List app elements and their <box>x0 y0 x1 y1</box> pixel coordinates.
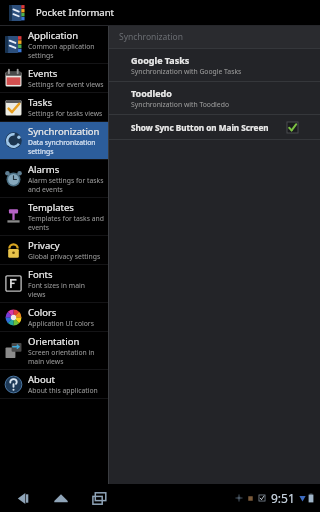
button[interactable]: Fonts <box>0 265 108 302</box>
button[interactable]: Recent apps <box>86 485 112 511</box>
staticText: Alarm settings for tasks and events <box>28 176 104 194</box>
button[interactable]: Toodledo <box>109 82 320 114</box>
staticText: Global privacy settings <box>28 252 101 261</box>
staticText: Data synchronization settings <box>28 138 104 156</box>
staticText: Settings for event views <box>28 80 104 89</box>
button[interactable]: Privacy <box>0 236 108 264</box>
staticText: Orientation <box>28 335 80 348</box>
staticText: Application UI colors <box>28 319 94 328</box>
staticText: Settings for tasks views <box>28 109 103 118</box>
staticText: About <box>28 373 55 386</box>
staticText: Privacy <box>28 239 60 252</box>
staticText: Pocket Informant <box>36 6 114 19</box>
staticText: Synchronization <box>119 31 183 43</box>
button[interactable]: Synchronization <box>0 122 108 159</box>
button[interactable]: Colors <box>0 303 108 331</box>
staticText: Application <box>28 29 79 42</box>
staticText: Toodledo <box>131 87 172 99</box>
staticText: Synchronization <box>28 125 100 138</box>
staticText: Fonts <box>28 268 53 281</box>
staticText: Templates for tasks and events <box>28 214 104 232</box>
staticText: Tasks <box>28 96 53 109</box>
button[interactable]: Templates <box>0 198 108 235</box>
button[interactable]: Google Tasks <box>109 49 320 81</box>
staticText: Templates <box>28 201 74 214</box>
button[interactable]: Application <box>0 26 108 63</box>
staticText: About this application <box>28 386 98 395</box>
staticText: Events <box>28 67 58 80</box>
staticText: Google Tasks <box>131 54 190 66</box>
button[interactable]: Orientation <box>0 332 108 369</box>
staticText: Font sizes in main views <box>28 281 104 299</box>
staticText: Synchronization with Google Tasks <box>131 67 242 76</box>
button[interactable]: Tasks <box>0 93 108 121</box>
button[interactable]: Alarms <box>0 160 108 197</box>
staticText: Common application settings <box>28 42 104 60</box>
other: Show sync button checkbox <box>287 122 298 133</box>
button[interactable]: Back <box>10 485 36 511</box>
button[interactable]: Show Sync Button on Main Screen <box>109 115 320 139</box>
staticText: Show Sync Button on Main Screen <box>131 122 287 133</box>
staticText: Alarms <box>28 163 60 176</box>
staticText: Colors <box>28 306 57 319</box>
staticText: 9:51 <box>271 490 295 506</box>
button[interactable]: About <box>0 370 108 398</box>
staticText: Synchronization with Toodledo <box>131 100 229 109</box>
button[interactable]: Events <box>0 64 108 92</box>
staticText: Screen orientation in main views <box>28 348 104 366</box>
button[interactable]: Home <box>48 485 74 511</box>
